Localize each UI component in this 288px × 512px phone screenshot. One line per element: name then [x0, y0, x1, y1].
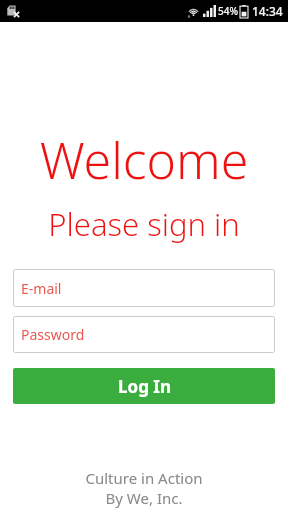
staticText: Log In — [118, 375, 171, 398]
staticText: Please sign in — [0, 203, 288, 245]
staticText: Welcome — [0, 126, 288, 194]
staticText: E-mail — [21, 279, 62, 298]
staticText: By We, Inc. — [0, 488, 288, 508]
staticText: Culture in Action — [0, 468, 288, 488]
button[interactable]: Password — [13, 316, 275, 353]
staticText: 54% — [218, 4, 238, 18]
staticText: 14:34 — [252, 3, 283, 19]
button[interactable]: Log In — [13, 368, 275, 404]
button[interactable]: E-mail — [13, 269, 275, 307]
staticText: Password — [21, 325, 85, 344]
